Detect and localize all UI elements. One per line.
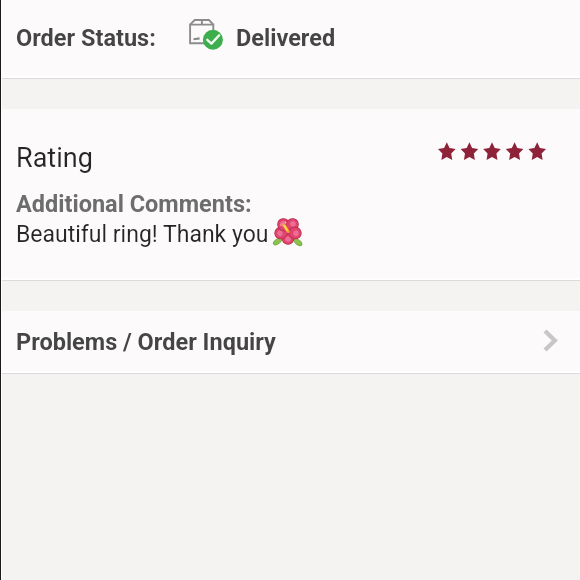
staticText: Rating [16, 142, 93, 174]
other: Order delivered [189, 20, 224, 51]
other: hibiscus [274, 218, 302, 245]
other: Open problems or order inquiry [543, 329, 557, 352]
staticText: Additional Comments: [16, 190, 252, 218]
button[interactable]: Order Status: [0, 0, 580, 76]
staticText: Order Status: [16, 24, 156, 52]
staticText: Beautiful ring! Thank you [16, 221, 269, 248]
other: 5 out of 5 stars [438, 142, 546, 161]
staticText: Problems / Order Inquiry [16, 328, 276, 356]
button[interactable]: Problems / Order Inquiry [0, 311, 580, 371]
button[interactable]: Rating [0, 109, 580, 278]
staticText: Delivered [236, 24, 336, 52]
